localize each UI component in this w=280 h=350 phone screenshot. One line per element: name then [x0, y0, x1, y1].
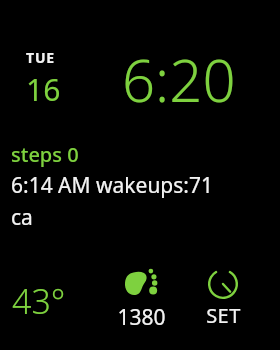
button[interactable]: 43°	[12, 278, 66, 324]
staticText: 16	[26, 69, 61, 110]
button[interactable]: Steps	[110, 266, 172, 332]
staticText: TUE	[26, 48, 55, 67]
staticText: SET	[206, 302, 241, 329]
staticText: 43°	[12, 278, 66, 324]
button[interactable]: steps 0	[11, 141, 280, 232]
button[interactable]: TUE	[26, 48, 61, 110]
button[interactable]: Set timer	[194, 268, 252, 329]
staticText: steps 0	[11, 141, 79, 168]
staticText: 6:20	[122, 40, 236, 119]
button[interactable]: 6:20	[122, 40, 236, 119]
staticText: 6:14 AM wakeups:71	[11, 171, 213, 200]
staticText: ca	[11, 203, 33, 232]
staticText: 1380	[117, 303, 166, 332]
